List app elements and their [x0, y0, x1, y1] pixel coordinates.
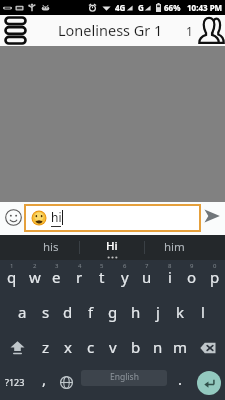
staticText: p — [210, 267, 220, 287]
button[interactable]: . — [170, 365, 190, 400]
button[interactable]: 0 — [203, 260, 225, 295]
staticText: a — [18, 302, 27, 322]
staticText: v — [109, 337, 117, 357]
button[interactable]: 6 — [113, 260, 136, 295]
staticText: k — [176, 302, 185, 322]
staticText: c — [87, 337, 95, 357]
button[interactable]: English — [81, 370, 167, 386]
button[interactable]: Backspace — [191, 330, 225, 365]
staticText: 4 — [78, 262, 82, 270]
staticText: English — [110, 371, 139, 383]
staticText: Hi — [106, 238, 118, 254]
button[interactable]: k — [169, 295, 192, 330]
staticText: his — [43, 239, 59, 255]
button[interactable]: Shift — [0, 330, 34, 365]
button[interactable]: 9 — [180, 260, 203, 295]
staticText: y — [121, 267, 129, 287]
button[interactable]: Group members — [186, 15, 224, 46]
staticText: 1 — [186, 23, 193, 39]
staticText: 4G — [115, 2, 126, 13]
staticText: f — [88, 302, 94, 322]
button[interactable]: Emoji keyboard — [1, 205, 25, 229]
staticText: j — [156, 302, 160, 322]
button[interactable]: 8 — [158, 260, 181, 295]
button[interactable]: Hi — [80, 235, 144, 260]
staticText: l — [201, 302, 205, 322]
button[interactable]: z — [34, 330, 57, 365]
staticText: w — [29, 267, 41, 287]
button[interactable]: f — [79, 295, 102, 330]
button[interactable]: his — [0, 235, 79, 260]
button[interactable]: v — [101, 330, 124, 365]
button[interactable]: c — [79, 330, 102, 365]
staticText: b — [131, 337, 141, 357]
staticText: him — [164, 239, 185, 255]
button[interactable]: b — [124, 330, 147, 365]
button[interactable]: 7 — [135, 260, 158, 295]
staticText: m — [173, 337, 188, 357]
button[interactable]: him — [144, 235, 225, 260]
button[interactable]: n — [146, 330, 169, 365]
staticText: 5 — [100, 262, 104, 270]
staticText: 1 — [10, 262, 14, 270]
button[interactable]: g — [101, 295, 124, 330]
staticText: G — [138, 2, 144, 13]
button[interactable]: 3 — [45, 260, 68, 295]
staticText: . — [178, 369, 183, 389]
button[interactable]: 4 — [68, 260, 91, 295]
button[interactable]: Change keyboard language — [55, 365, 77, 400]
staticText: Loneliness Gr 1 — [58, 20, 163, 40]
button[interactable]: 5 — [90, 260, 113, 295]
staticText: s — [42, 302, 50, 322]
button[interactable]: hi — [24, 204, 201, 232]
staticText: g — [108, 302, 118, 322]
staticText: h — [131, 302, 141, 322]
staticText: ?123 — [5, 376, 25, 388]
button[interactable]: a — [11, 295, 34, 330]
staticText: o — [187, 267, 197, 287]
button[interactable]: Enter — [192, 365, 225, 400]
button[interactable]: 2 — [23, 260, 46, 295]
button[interactable]: Send message — [200, 204, 224, 228]
staticText: r — [76, 267, 83, 287]
staticText: e — [52, 267, 61, 287]
staticText: 6 — [123, 262, 127, 270]
button[interactable]: 1 — [0, 260, 23, 295]
staticText: 3 — [55, 262, 59, 270]
staticText: 10:43 PM — [187, 2, 223, 13]
button[interactable]: m — [169, 330, 192, 365]
staticText: u — [142, 267, 152, 287]
staticText: 66% — [164, 2, 181, 13]
staticText: i — [168, 267, 172, 287]
button[interactable]: l — [191, 295, 214, 330]
button[interactable]: x — [56, 330, 79, 365]
button[interactable]: h — [124, 295, 147, 330]
staticText: 7 — [145, 262, 149, 270]
staticText: q — [7, 267, 17, 287]
staticText: 2 — [33, 262, 37, 270]
staticText: 8 — [168, 262, 172, 270]
button[interactable]: , — [33, 365, 55, 400]
staticText: , — [42, 369, 47, 389]
button[interactable]: d — [56, 295, 79, 330]
button[interactable]: ?123 — [0, 365, 30, 400]
button[interactable]: Menu — [0, 15, 30, 46]
staticText: x — [64, 337, 72, 357]
staticText: n — [153, 337, 163, 357]
button[interactable]: j — [146, 295, 169, 330]
staticText: t — [99, 267, 105, 287]
staticText: 9 — [190, 262, 194, 270]
staticText: d — [63, 302, 73, 322]
staticText: 0 — [213, 262, 217, 270]
staticText: z — [42, 337, 50, 357]
button[interactable]: s — [34, 295, 57, 330]
staticText: hi — [51, 209, 62, 225]
